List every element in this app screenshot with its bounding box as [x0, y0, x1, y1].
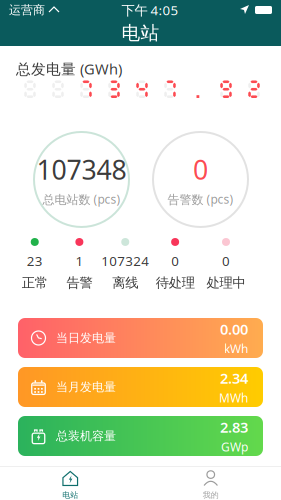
staticText: 告警数 (pcs): [167, 191, 233, 207]
staticText: 离线: [112, 275, 138, 291]
button[interactable]: 我的: [140, 466, 281, 499]
staticText: 运营商: [9, 3, 45, 17]
staticText: 当日发电量: [56, 331, 116, 345]
staticText: 当月发电量: [56, 380, 116, 394]
staticText: GWp: [221, 439, 248, 455]
staticText: 电站: [121, 21, 159, 44]
staticText: 电站: [62, 490, 78, 500]
staticText: 0: [222, 252, 230, 270]
staticText: 0: [193, 152, 208, 187]
staticText: 总装机容量: [56, 429, 116, 443]
staticText: 2.83: [220, 417, 248, 437]
button[interactable]: 电站: [0, 466, 140, 499]
staticText: 1: [75, 252, 83, 270]
staticText: 处理中: [206, 275, 245, 291]
staticText: 总电站数 (pcs): [42, 191, 120, 207]
staticText: 107348: [36, 152, 126, 187]
staticText: 下午 4:05: [121, 1, 178, 19]
staticText: kWh: [224, 341, 248, 357]
staticText: 0.00: [220, 319, 248, 339]
button[interactable]: 当月发电量: [18, 367, 263, 407]
staticText: 23: [27, 252, 43, 270]
staticText: 0: [171, 252, 179, 270]
staticText: 我的: [203, 490, 219, 500]
staticText: 待处理: [156, 275, 195, 291]
staticText: MWh: [219, 390, 248, 406]
button[interactable]: 当日发电量: [18, 318, 263, 358]
staticText: 总发电量 (GWh): [16, 59, 122, 78]
staticText: 告警: [66, 275, 92, 291]
button[interactable]: 总装机容量: [18, 416, 263, 456]
staticText: 107324: [101, 252, 149, 270]
staticText: 正常: [22, 275, 48, 291]
staticText: 2.34: [220, 368, 248, 388]
